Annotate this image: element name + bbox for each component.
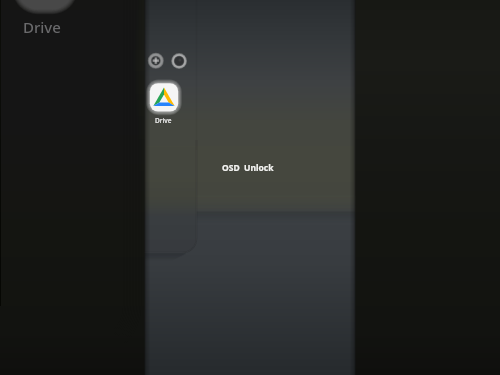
staticText: Drive [23,17,61,37]
button[interactable]: Drive app [149,83,178,112]
staticText: Drive [155,116,172,125]
staticText: OSD Unlock [222,162,274,174]
